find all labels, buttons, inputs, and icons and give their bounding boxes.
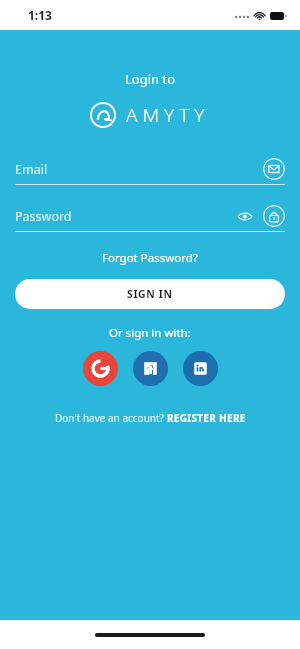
staticText: AMYTY: [126, 102, 210, 128]
staticText: Or sign in with:: [109, 325, 191, 341]
button[interactable]: Forgot Password?: [96, 248, 204, 268]
button[interactable]: SIGN IN: [15, 279, 285, 309]
button[interactable]: Password: [263, 205, 285, 227]
button[interactable]: Email: [263, 158, 285, 180]
staticText: Email: [15, 161, 263, 178]
button[interactable]: Sign in with Google: [83, 351, 118, 386]
staticText: Forgot Password?: [102, 250, 198, 266]
staticText: SIGN IN: [127, 287, 173, 301]
button[interactable]: Show password: [235, 206, 255, 226]
staticText: Login to: [125, 70, 175, 88]
staticText: REGISTER HERE: [167, 411, 246, 425]
staticText: 1:13: [28, 7, 52, 23]
button[interactable]: Don't have an account?: [49, 408, 252, 428]
staticText: Don't have an account?: [55, 411, 167, 425]
staticText: Password: [15, 208, 235, 225]
button[interactable]: Sign in with Facebook: [133, 351, 168, 386]
button[interactable]: Sign in with LinkedIn: [183, 351, 218, 386]
